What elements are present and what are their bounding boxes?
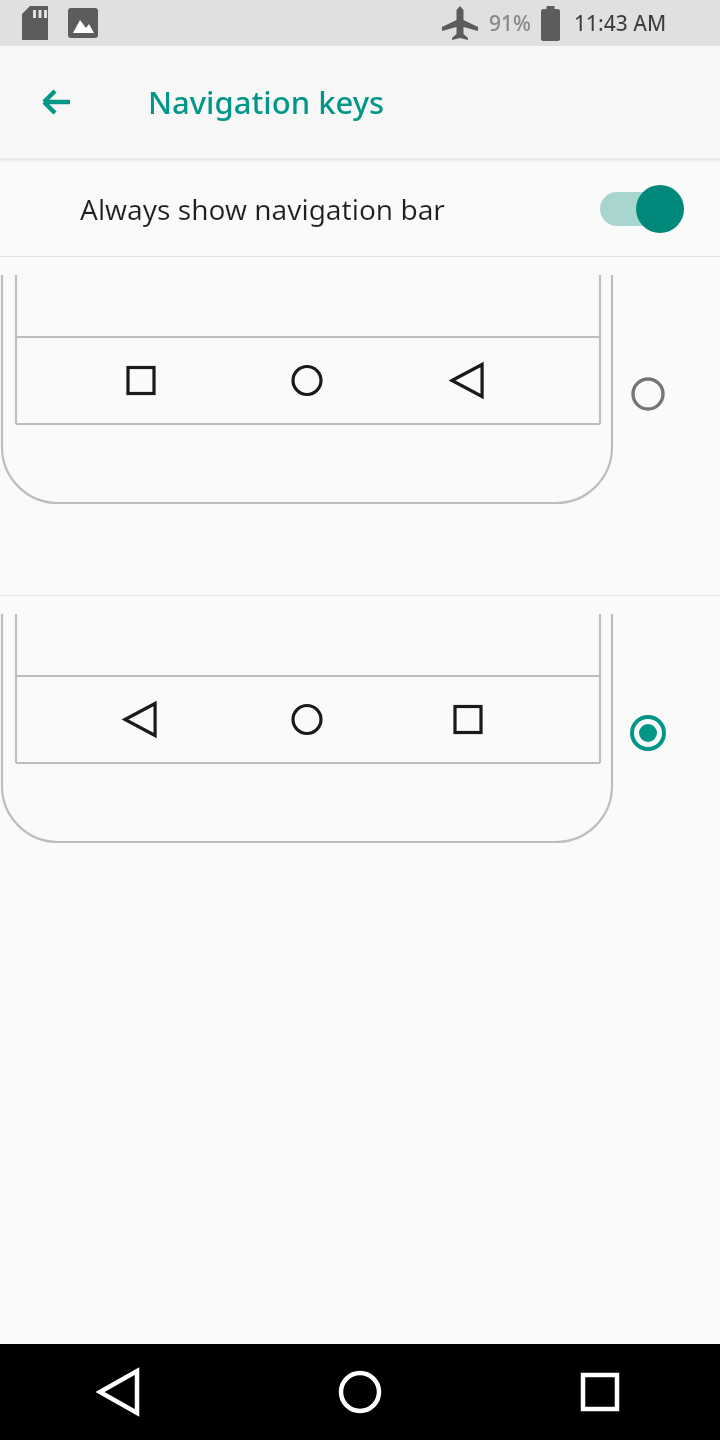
button[interactable]: Navigate up bbox=[24, 69, 90, 135]
staticText: Navigation keys bbox=[148, 81, 385, 123]
staticText: 11:43 AM bbox=[574, 9, 667, 38]
button[interactable]: Recent apps bbox=[480, 1344, 720, 1440]
staticText: Always show navigation bar bbox=[80, 190, 600, 228]
staticText: 91% bbox=[489, 9, 531, 38]
button[interactable] bbox=[0, 257, 720, 595]
button[interactable]: Always show navigation bar bbox=[0, 162, 720, 256]
button[interactable] bbox=[0, 596, 720, 934]
button[interactable]: Home bbox=[240, 1344, 480, 1440]
button[interactable]: Back bbox=[0, 1344, 240, 1440]
